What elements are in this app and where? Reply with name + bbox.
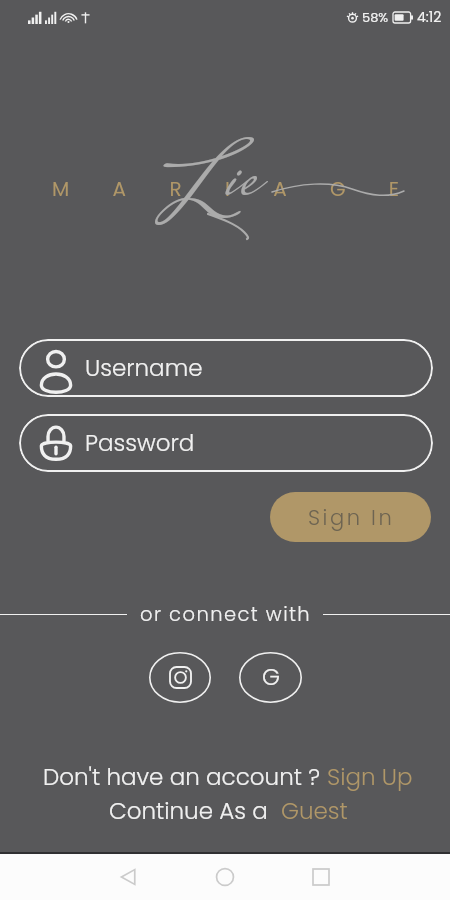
button[interactable]: Sign in with Google [239,652,302,703]
staticText: Don't have an account ? [43,761,327,793]
staticText: ie [223,123,258,242]
staticText: Sign Up [327,761,413,793]
staticText: Guest [281,795,348,827]
button[interactable]: Sign Up [327,761,413,793]
staticText: G [262,661,280,693]
button[interactable]: Back [105,854,153,900]
staticText: L [155,120,242,283]
staticText: 4:12 [417,7,442,27]
staticText: Username [85,352,203,384]
staticText: or connect with [140,601,312,627]
button[interactable]: Password [19,414,433,472]
staticText: M A R I A G E [52,175,419,203]
button[interactable]: Sign In [270,492,431,542]
button[interactable]: Sign in with Instagram [149,652,211,703]
button[interactable]: Recent apps [297,854,345,900]
button[interactable]: Home [201,854,249,900]
staticText: Sign In [308,503,395,532]
staticText: 58% [362,8,389,26]
staticText: Password [85,427,195,459]
button[interactable]: Username [19,339,433,397]
button[interactable]: Guest [281,795,348,827]
staticText: Continue As a [109,795,281,827]
